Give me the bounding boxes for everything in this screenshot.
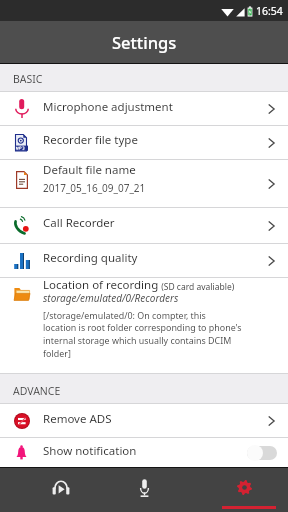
- staticText: 2017_05_16_09_07_21: [43, 181, 146, 195]
- staticText: Recording quality: [43, 250, 138, 266]
- staticText: Call Recorder: [43, 215, 115, 231]
- staticText: (SD card avaliable): [159, 281, 235, 293]
- staticText: storage/emulated/0/Recorders: [43, 291, 179, 305]
- staticText: 16:54: [256, 4, 283, 18]
- staticText: BASIC: [13, 72, 43, 86]
- staticText: Settings: [112, 31, 177, 53]
- button[interactable]: Show notification: [0, 438, 288, 467]
- button[interactable]: Player: [0, 468, 96, 512]
- button[interactable]: Call Recorder: [0, 208, 288, 243]
- button[interactable]: Default file name: [0, 160, 288, 207]
- button[interactable]: Recorder: [96, 468, 192, 512]
- staticText: [/storage/emulated/0: On compter, this l…: [43, 309, 242, 360]
- staticText: Remove ADS: [43, 411, 112, 427]
- button[interactable]: Location of recording: [0, 278, 288, 373]
- staticText: Default file name: [43, 162, 136, 178]
- button[interactable]: Recording quality: [0, 244, 288, 277]
- staticText: ADVANCE: [13, 384, 61, 398]
- button[interactable]: Remove ADS: [0, 404, 288, 437]
- staticText: Microphone adjustment: [43, 99, 173, 115]
- button[interactable]: Settings: [192, 468, 288, 512]
- staticText: Location of recording: [43, 277, 159, 293]
- button[interactable]: Microphone adjustment: [0, 92, 288, 125]
- button[interactable]: Recorder file type: [0, 126, 288, 159]
- staticText: Show notification: [43, 443, 247, 459]
- staticText: Recorder file type: [43, 132, 138, 148]
